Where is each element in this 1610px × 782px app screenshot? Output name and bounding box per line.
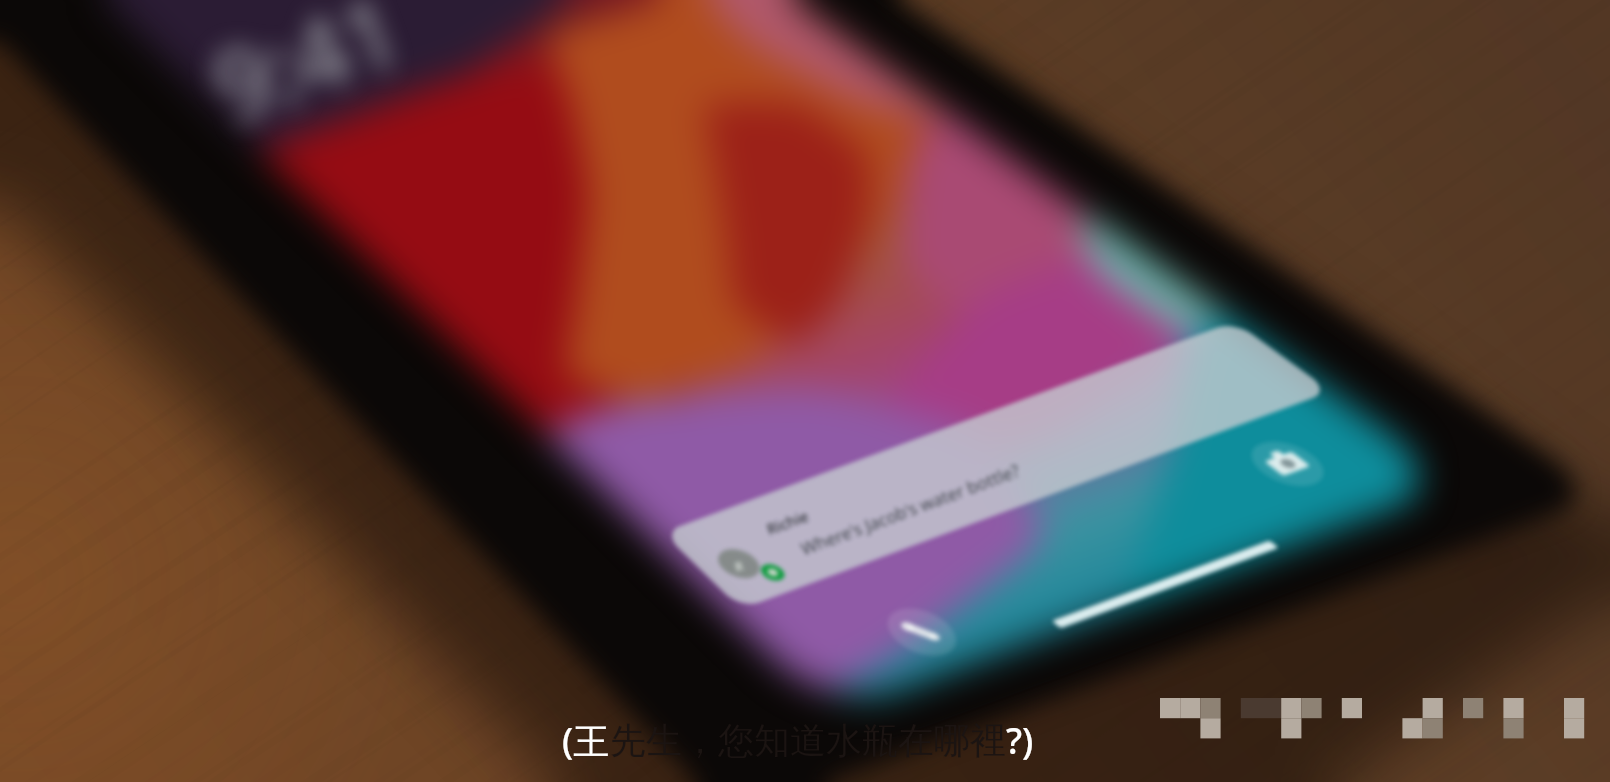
button[interactable]: Unlock [1030,520,1290,640]
button[interactable]: Camera [1222,400,1332,500]
button[interactable]: Phone [856,568,964,668]
button[interactable]: Richie: Where's Jacob's water bottle? [690,330,1280,580]
